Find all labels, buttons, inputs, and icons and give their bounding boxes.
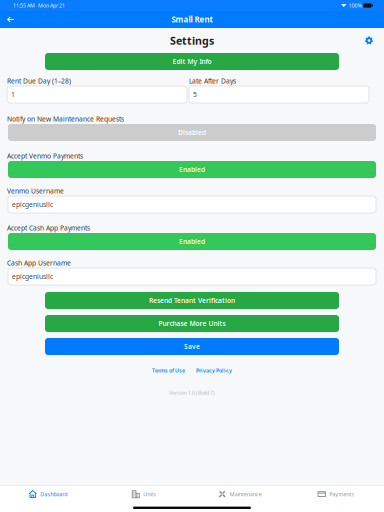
button[interactable]: Dashboard [0, 486, 96, 503]
staticText: Resend Tenant Verification [149, 296, 235, 305]
staticText: Payments [329, 491, 354, 498]
staticText: Late After Days [189, 77, 236, 85]
staticText: Venmo Username [7, 187, 64, 195]
staticText: Purchase More Units [158, 319, 225, 328]
staticText: 5 [193, 90, 197, 99]
staticText: Accept Cash App Payments [7, 224, 90, 232]
staticText: Notify on New Maintenance Requests [7, 115, 124, 123]
staticText: Enabled [179, 237, 205, 246]
button[interactable]: Edit My Info [45, 53, 339, 70]
button[interactable]: Maintenance [192, 486, 288, 503]
button[interactable]: Enabled [8, 161, 376, 178]
button[interactable]: Resend Tenant Verification [45, 292, 339, 309]
staticText: Small Rent [171, 14, 212, 25]
button[interactable]: Disabled [8, 124, 376, 141]
staticText: 1 [11, 90, 15, 99]
staticText: 100% [346, 2, 363, 9]
staticText: epicgeniusllc [12, 272, 53, 281]
staticText: Units [143, 491, 156, 498]
staticText: Disabled [178, 128, 206, 137]
button[interactable]: Save [45, 338, 339, 355]
staticText: Settings [170, 33, 214, 48]
button[interactable]: Enabled [8, 233, 376, 250]
button[interactable]: Back [0, 11, 22, 28]
staticText: epicgeniusllc [12, 200, 53, 209]
staticText: Terms of Use [152, 367, 185, 374]
button[interactable]: Privacy Policy [196, 367, 232, 374]
staticText: Maintenance [230, 491, 262, 498]
staticText: Cash App Username [7, 259, 71, 267]
button[interactable]: Terms of Use [152, 367, 185, 374]
button[interactable]: Payments [288, 486, 384, 503]
staticText: Version 1.0 (Build 7) [169, 389, 215, 396]
staticText: Dashboard [40, 491, 67, 498]
staticText: Edit My Info [172, 57, 211, 66]
staticText: 11:55 AM Mon Apr 21 [13, 2, 65, 9]
staticText: Enabled [179, 165, 205, 174]
button[interactable]: Units [96, 486, 192, 503]
button[interactable]: Settings [362, 33, 376, 47]
staticText: Accept Venmo Payments [7, 152, 83, 160]
staticText: Privacy Policy [196, 367, 232, 374]
staticText: Rent Due Day (1–28) [7, 77, 71, 85]
button[interactable]: Purchase More Units [45, 315, 339, 332]
staticText: Save [184, 342, 200, 351]
